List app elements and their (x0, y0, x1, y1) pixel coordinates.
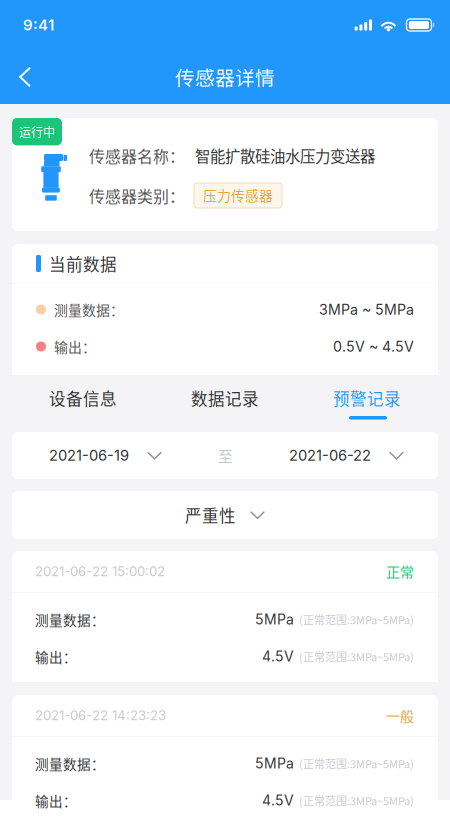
staticText: 压力传感器 (203, 185, 273, 205)
staticText: 严重性 (185, 503, 236, 527)
staticText: 4.5V (262, 648, 294, 665)
staticText: 2021-06-22 15:00:02 (35, 563, 165, 579)
staticText: 0.5V ~ 4.5V (333, 338, 414, 355)
staticText: 数据记录 (191, 386, 259, 410)
staticText: (正常范围:3MPa~5MPa) (299, 648, 414, 664)
staticText: 2021-06-22 (289, 447, 371, 464)
staticText: 智能扩散硅油水压力变送器 (195, 144, 375, 167)
staticText: 至 (218, 445, 233, 466)
staticText: 一般 (386, 705, 414, 726)
staticText: 测量数据： (35, 754, 105, 773)
staticText: 运行中 (19, 123, 55, 140)
staticText: 当前数据 (49, 252, 117, 275)
staticText: (正常范围:3MPa~5MPa) (299, 755, 414, 771)
staticText: (正常范围:3MPa~5MPa) (299, 611, 414, 627)
staticText: 输出： (35, 647, 77, 666)
staticText: 测量数据： (35, 610, 105, 629)
staticText: 4.5V (262, 792, 294, 809)
staticText: 9:41 (23, 16, 54, 34)
button[interactable]: 严重性 (12, 491, 438, 539)
staticText: 传感器名称： (89, 144, 185, 167)
staticText: 2021-06-22 14:23:23 (35, 707, 166, 723)
staticText: 3MPa ~ 5MPa (319, 301, 414, 318)
staticText: 正常 (386, 561, 414, 582)
staticText: 传感器类别： (89, 184, 185, 207)
button[interactable]: 2021-06-22 (289, 432, 438, 479)
staticText: 2021-06-19 (49, 447, 129, 464)
staticText: (正常范围:3MPa~5MPa) (299, 792, 414, 808)
staticText: 输出： (54, 336, 96, 356)
button[interactable]: 数据记录 (154, 376, 296, 426)
staticText: 预警记录 (333, 386, 401, 410)
button[interactable]: 2021-06-19 (12, 432, 162, 479)
staticText: 测量数据： (54, 299, 124, 319)
staticText: 5MPa (255, 611, 294, 628)
staticText: 5MPa (255, 755, 294, 772)
button[interactable]: 返回 (0, 50, 50, 104)
button[interactable]: 预警记录 (296, 376, 438, 426)
staticText: 传感器详情 (175, 63, 275, 91)
staticText: 设备信息 (49, 386, 117, 410)
staticText: 输出： (35, 791, 77, 810)
button[interactable]: 设备信息 (12, 376, 154, 426)
